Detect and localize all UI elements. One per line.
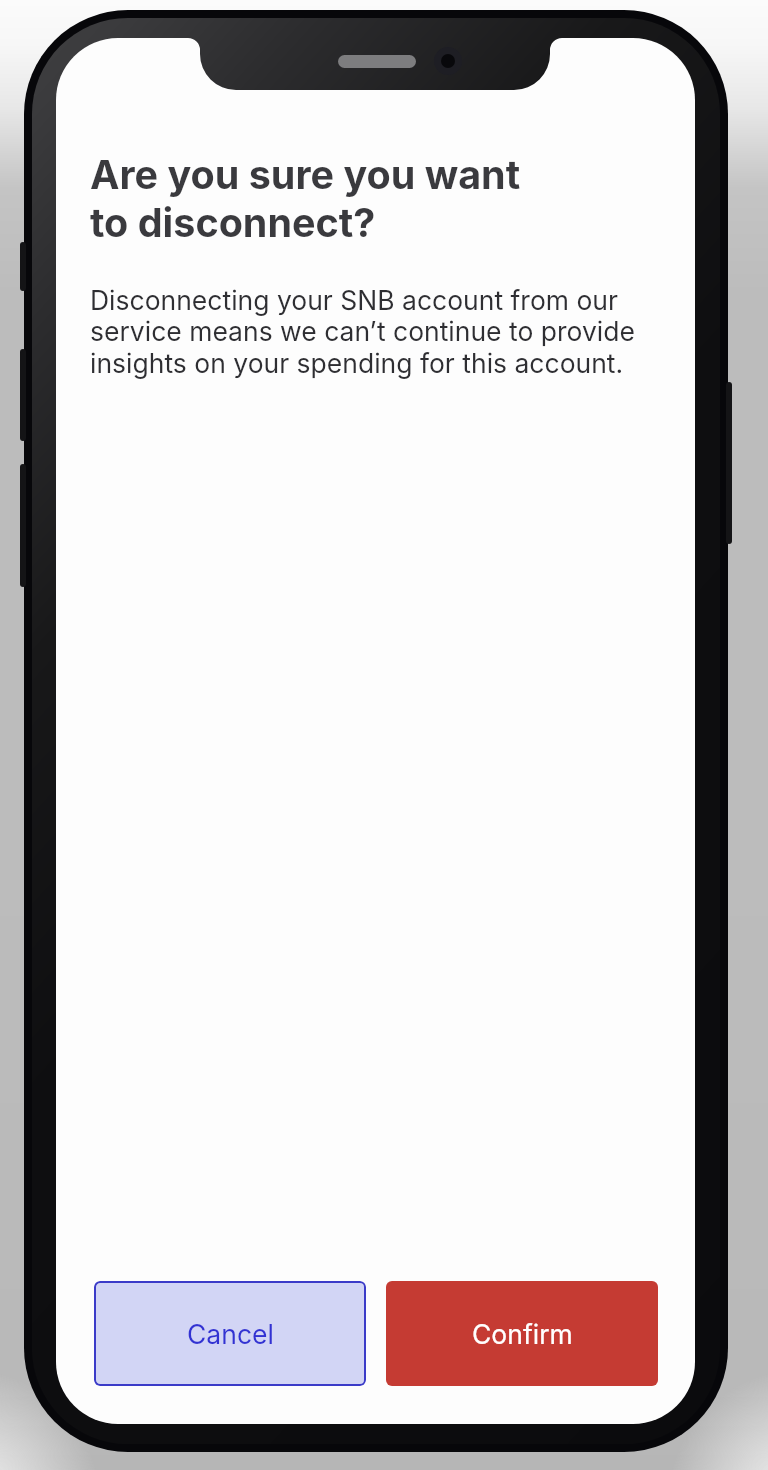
staticText: Cancel (187, 1318, 274, 1350)
staticText: Confirm (472, 1318, 573, 1350)
button[interactable]: Cancel (94, 1281, 366, 1386)
staticText: Are you sure you want to disconnect? (90, 151, 521, 247)
staticText: Disconnecting your SNB account from our … (90, 284, 635, 380)
button[interactable]: Confirm (386, 1281, 658, 1386)
